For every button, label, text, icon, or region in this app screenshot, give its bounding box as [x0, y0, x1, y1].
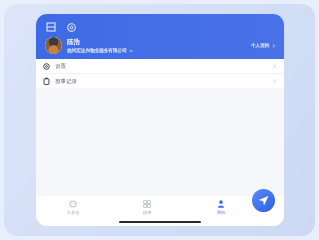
staticText: 报事记录 — [55, 78, 272, 85]
button[interactable]: 报事记录 — [36, 74, 284, 88]
button[interactable]: 应用 — [110, 196, 184, 218]
staticText: 个人资料 — [251, 43, 270, 49]
button[interactable]: 陈浩 — [45, 37, 276, 54]
staticText: 我的 — [217, 210, 226, 215]
button[interactable]: Scan — [44, 20, 58, 34]
button[interactable]: 个人资料 — [251, 43, 276, 49]
staticText: 应用 — [143, 210, 152, 215]
button[interactable]: Settings — [64, 20, 78, 34]
button[interactable]: 工作台 — [36, 196, 110, 218]
staticText: 陈浩 — [67, 38, 80, 46]
staticText: 工作台 — [67, 210, 80, 215]
button[interactable]: 我的 — [184, 196, 258, 218]
staticText: 杭州宏达兴物业服务有限公司 — [67, 48, 127, 54]
staticText: 设置 — [55, 63, 272, 70]
button[interactable]: Send — [252, 189, 275, 212]
button[interactable]: 设置 — [36, 59, 284, 73]
